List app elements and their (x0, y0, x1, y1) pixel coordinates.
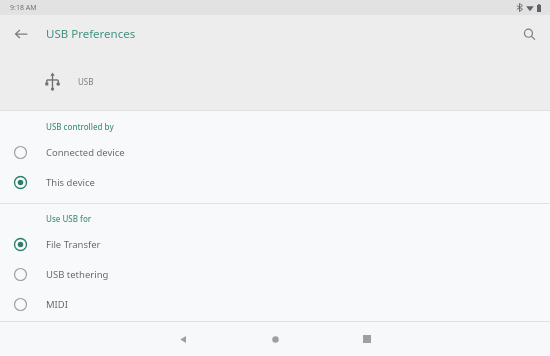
button[interactable]: USB tethering (0, 259, 550, 289)
staticText: MIDI (46, 298, 68, 311)
staticText: File Transfer (46, 238, 101, 251)
button[interactable]: Back (161, 324, 205, 354)
button[interactable]: Back (8, 21, 34, 47)
staticText: 9:18 AM (10, 3, 37, 13)
button[interactable]: Connected device (0, 137, 550, 167)
button[interactable]: Search (516, 21, 542, 47)
button[interactable]: Recent apps (345, 324, 389, 354)
button[interactable]: File Transfer (0, 229, 550, 259)
staticText: USB controlled by (46, 121, 114, 132)
staticText: USB Preferences (46, 26, 136, 42)
button[interactable]: MIDI (0, 289, 550, 319)
staticText: Connected device (46, 146, 125, 159)
staticText: This device (46, 176, 95, 189)
button[interactable]: This device (0, 167, 550, 197)
staticText: Use USB for (46, 213, 92, 224)
button[interactable]: Home (253, 324, 297, 354)
staticText: USB (78, 76, 94, 87)
staticText: USB tethering (46, 268, 109, 281)
